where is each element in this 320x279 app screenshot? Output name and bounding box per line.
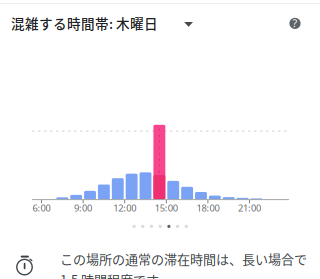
staticText: 12:00 <box>113 202 136 214</box>
staticText: 15:00 <box>155 202 178 214</box>
staticText: ? <box>292 16 297 30</box>
staticText: 18:00 <box>196 202 219 214</box>
staticText: 1.5 時間程度です <box>60 270 159 279</box>
staticText: この場所の通常の滞在時間は、長い場合で <box>60 249 307 268</box>
staticText: 6:00 <box>32 202 50 214</box>
button[interactable]: ヘルプ <box>282 10 308 36</box>
staticText: 混雑する時間帯: 木曜日 <box>11 13 158 33</box>
staticText: 21:00 <box>238 202 261 214</box>
button[interactable]: 混雑する時間帯: 木曜日 <box>11 10 209 36</box>
staticText: 9:00 <box>74 202 92 214</box>
